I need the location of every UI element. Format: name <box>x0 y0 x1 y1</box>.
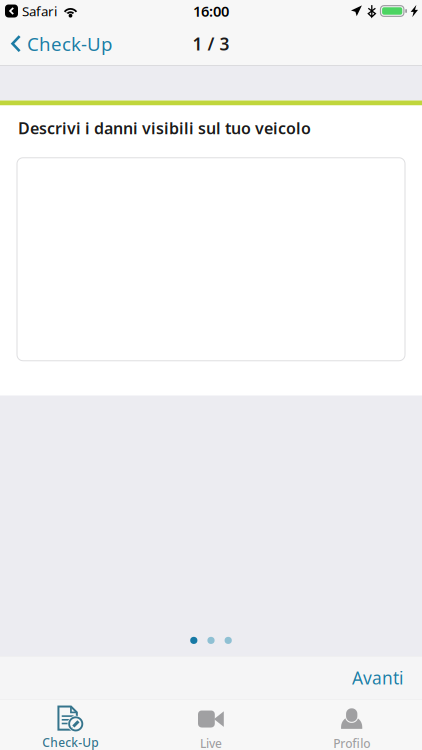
staticText: 1 / 3 <box>192 32 229 55</box>
staticText: Avanti <box>352 666 403 689</box>
staticText: Live <box>200 735 222 750</box>
button[interactable]: Profilo <box>281 699 422 750</box>
button[interactable]: Check-Up <box>0 24 124 63</box>
button[interactable]: Avanti <box>333 656 422 699</box>
staticText: Descrivi i danni visibili sul tuo veicol… <box>18 117 311 139</box>
staticText: Check-Up <box>42 734 98 750</box>
staticText: Safari <box>22 2 57 20</box>
staticText: Check-Up <box>27 31 112 56</box>
button[interactable]: Check-Up <box>0 699 141 750</box>
staticText: 16:00 <box>193 1 229 21</box>
button[interactable]: Live <box>141 699 281 750</box>
staticText: Profilo <box>333 735 370 750</box>
